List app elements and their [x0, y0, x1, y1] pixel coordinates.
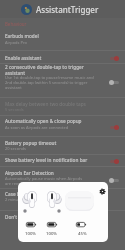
staticText: Automatically pause music when Airpods a… [5, 176, 105, 186]
staticText: 20 seconds [5, 146, 26, 151]
button[interactable]: Switch on [109, 55, 119, 62]
staticText: Earbuds model [5, 33, 39, 39]
staticText: Airpods Pro [5, 40, 27, 45]
staticText: Max delay between two double taps [5, 101, 86, 107]
button[interactable] [0, 116, 125, 137]
button[interactable] [0, 167, 125, 189]
staticText: 2 consecutive double-tap to trigger assi… [5, 64, 84, 76]
staticText: As soon as Airpods are connected [5, 125, 69, 130]
staticText: 5 seconds [5, 107, 24, 112]
button[interactable] [0, 211, 125, 225]
button[interactable] [0, 155, 125, 167]
button[interactable] [0, 137, 125, 155]
staticText: Case battery [5, 191, 34, 197]
button[interactable] [0, 189, 125, 211]
button[interactable]: Switch on [109, 158, 119, 165]
staticText: Airpods Ear Detection [5, 170, 54, 176]
button[interactable]: Settings [99, 188, 106, 195]
staticText: 2 minutes [5, 197, 24, 202]
staticText: 100% [46, 230, 58, 236]
staticText: 100% [25, 230, 37, 236]
staticText: 45% [78, 230, 87, 236]
staticText: Use 1st double-tap to pause/resume music… [5, 75, 107, 90]
staticText: Behaviour [5, 21, 27, 27]
button[interactable]: AssistantTrigger [0, 0, 125, 18]
staticText: Battery popup timeout [5, 140, 57, 146]
staticText: Automatically open & close popup [5, 118, 82, 124]
button[interactable] [0, 29, 125, 51]
button[interactable]: Switch off [109, 79, 119, 86]
staticText: Enable assistant [5, 55, 42, 61]
button[interactable] [0, 98, 125, 116]
button[interactable]: Switch off [109, 177, 119, 184]
staticText: AssistantTrigger [36, 4, 99, 15]
staticText: Don't show again [5, 214, 44, 220]
staticText: Show battery level in notification bar [5, 157, 88, 163]
button[interactable]: Switch on [109, 124, 119, 131]
button[interactable] [0, 51, 125, 64]
button[interactable] [0, 64, 125, 98]
